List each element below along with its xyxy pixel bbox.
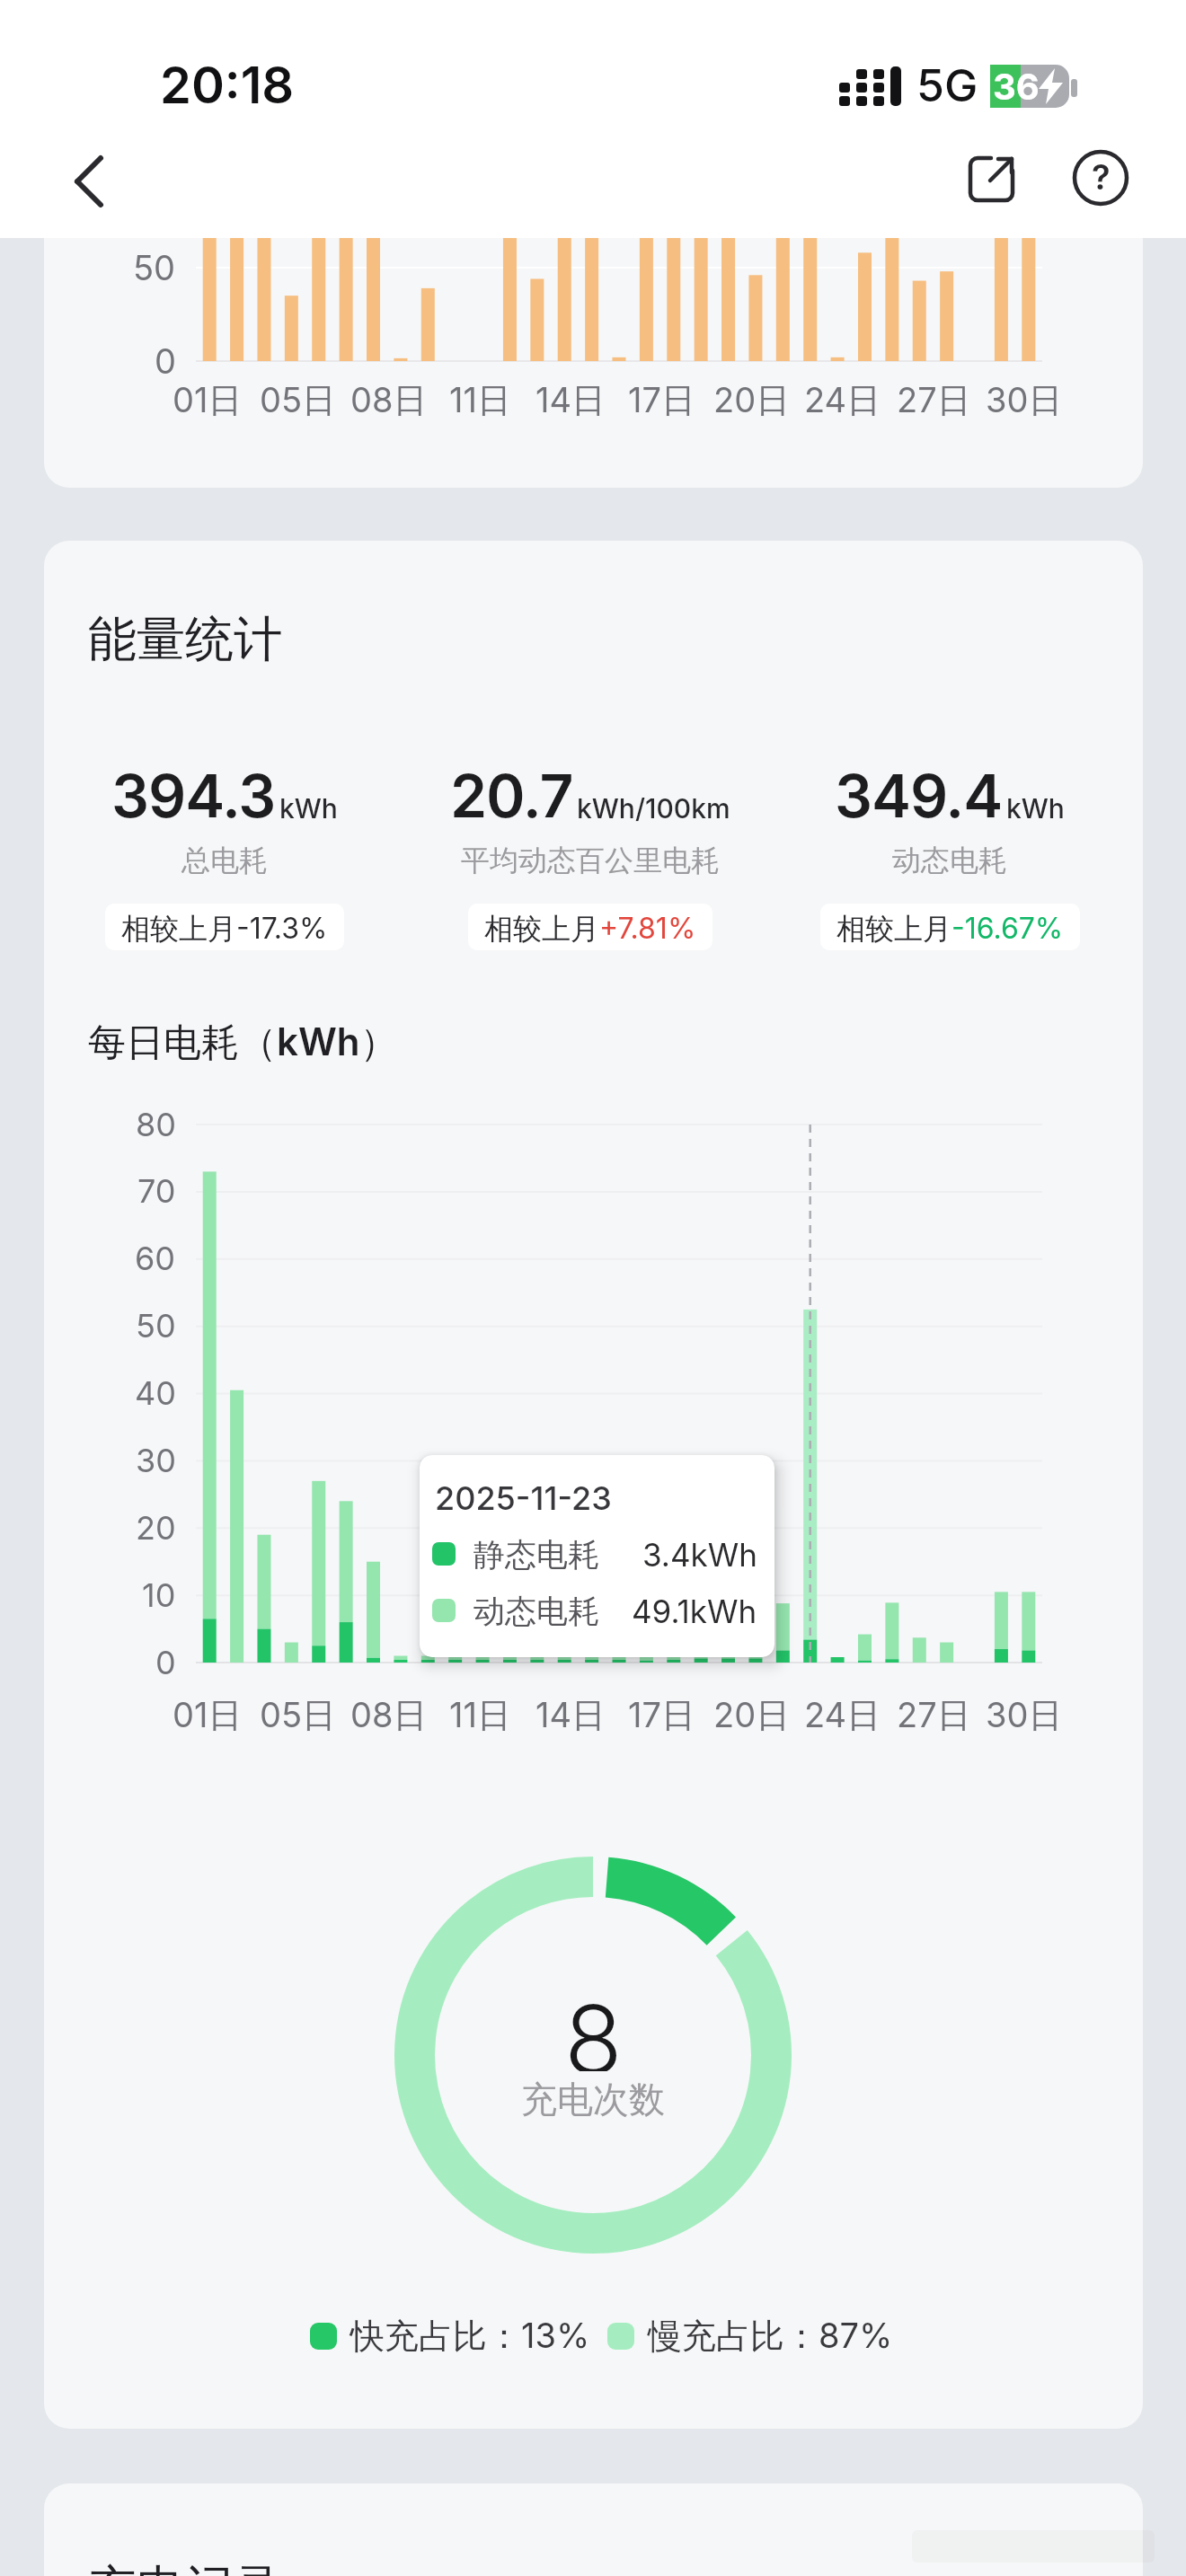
staticText: 30日 <box>986 379 1063 422</box>
staticText: kWh/100km <box>577 792 730 825</box>
staticText: 70 <box>137 1171 176 1211</box>
button[interactable] <box>1066 144 1137 216</box>
staticText: 能量统计 <box>88 609 282 670</box>
staticText: 0 <box>155 1643 176 1682</box>
staticText: 30 <box>136 1441 176 1480</box>
staticText: 14日 <box>535 379 606 422</box>
staticText: 50 <box>133 247 176 288</box>
staticText: 动态电耗 <box>474 1592 599 1631</box>
staticText: 0 <box>155 340 176 382</box>
staticText: +7.81% <box>599 911 696 943</box>
staticText: 20日 <box>713 379 791 422</box>
button[interactable] <box>956 144 1028 216</box>
staticText: 动态电耗 <box>892 842 1007 878</box>
staticText: 17日 <box>628 1694 695 1737</box>
button[interactable] <box>54 140 135 221</box>
staticText: 27日 <box>897 1694 971 1737</box>
staticText: 8 <box>564 1981 623 2071</box>
staticText: 14日 <box>535 1694 606 1737</box>
staticText: 11日 <box>449 379 511 422</box>
staticText: 相较上月 <box>836 911 951 943</box>
staticText: 349.4 <box>835 760 1003 832</box>
staticText: 17日 <box>628 379 695 422</box>
staticText: 快充占比：13% <box>350 2315 590 2358</box>
staticText: 相较上月 <box>484 911 599 943</box>
staticText: 11日 <box>449 1694 511 1737</box>
staticText: 08日 <box>350 379 428 422</box>
staticText: 05日 <box>260 1694 337 1737</box>
staticText: 49.1kWh <box>632 1592 757 1630</box>
staticText: 24日 <box>804 379 881 422</box>
staticText: 每日电耗（kWh） <box>88 1019 398 1066</box>
staticText: -17.3% <box>236 911 328 943</box>
staticText: 01日 <box>173 1694 243 1737</box>
staticText: 平均动态百公里电耗 <box>461 842 720 878</box>
staticText: 20日 <box>713 1694 791 1737</box>
staticText: 5G <box>916 58 978 112</box>
staticText: 20:18 <box>160 55 295 116</box>
staticText: 40 <box>135 1373 176 1413</box>
staticText: 总电耗 <box>181 842 268 878</box>
staticText: 80 <box>136 1105 176 1144</box>
staticText: -16.67% <box>951 911 1064 943</box>
staticText: 慢充占比：87% <box>648 2315 893 2358</box>
staticText: 27日 <box>897 379 971 422</box>
staticText: 30日 <box>986 1694 1063 1737</box>
staticText: 20 <box>136 1508 176 1548</box>
staticText: 24日 <box>804 1694 881 1737</box>
staticText: 01日 <box>173 379 243 422</box>
staticText: 10 <box>142 1575 176 1615</box>
staticText: 3.4kWh <box>642 1536 757 1574</box>
staticText: kWh <box>1006 792 1065 825</box>
staticText: 2025-11-23 <box>435 1478 612 1518</box>
staticText: 08日 <box>350 1694 428 1737</box>
staticText: ? <box>1092 156 1111 198</box>
staticText: 36 <box>993 65 1040 108</box>
staticText: 20.7 <box>450 760 573 832</box>
staticText: 静态电耗 <box>474 1535 599 1575</box>
staticText: 50 <box>136 1306 176 1345</box>
staticText: 394.3 <box>111 760 276 832</box>
staticText: 60 <box>135 1239 176 1278</box>
staticText: 充电次数 <box>521 2077 665 2122</box>
staticText: 充电记录 <box>88 2558 282 2576</box>
staticText: kWh <box>279 792 338 825</box>
staticText: 05日 <box>260 379 337 422</box>
staticText: 相较上月 <box>121 911 236 943</box>
